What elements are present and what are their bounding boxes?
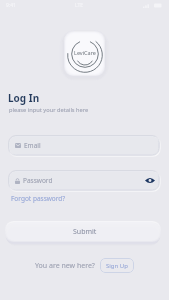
button[interactable]: Show password — [145, 177, 155, 184]
button[interactable]: Password — [8, 170, 160, 191]
staticText: Submit — [73, 227, 97, 237]
staticText: You are new here? — [35, 261, 95, 271]
staticText: Sign Up — [106, 262, 128, 270]
staticText: 9:41 — [6, 2, 16, 9]
staticText: Email — [24, 141, 41, 150]
button[interactable]: Forgot password? — [11, 194, 66, 203]
button[interactable]: Sign Up — [100, 258, 134, 273]
staticText: please input your details here — [9, 106, 89, 114]
staticText: Forgot password? — [11, 194, 66, 203]
button[interactable]: Submit — [5, 221, 161, 242]
staticText: LTE — [75, 2, 84, 9]
staticText: LeviCare — [74, 49, 96, 56]
button[interactable]: Email — [8, 135, 160, 156]
staticText: Password — [23, 176, 53, 185]
staticText: Log In — [8, 91, 40, 105]
